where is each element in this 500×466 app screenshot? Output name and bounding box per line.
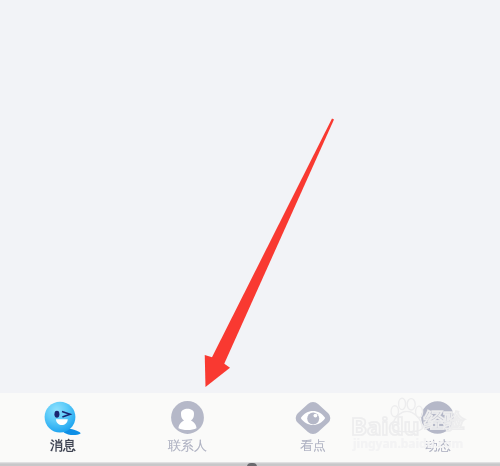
button[interactable]: 看点 xyxy=(250,393,375,462)
staticText: 消息 xyxy=(50,437,76,453)
staticText: 动态 xyxy=(425,437,451,453)
staticText: jingyan.baidu.com xyxy=(353,435,464,451)
staticText: 经验 xyxy=(424,409,464,434)
button[interactable]: 动态 xyxy=(375,393,500,462)
button[interactable]: 联系人 xyxy=(125,393,250,462)
button[interactable]: 消息 xyxy=(0,393,125,462)
staticText: Baidu xyxy=(351,409,420,442)
staticText: 看点 xyxy=(300,437,326,453)
staticText: 联系人 xyxy=(168,437,207,453)
